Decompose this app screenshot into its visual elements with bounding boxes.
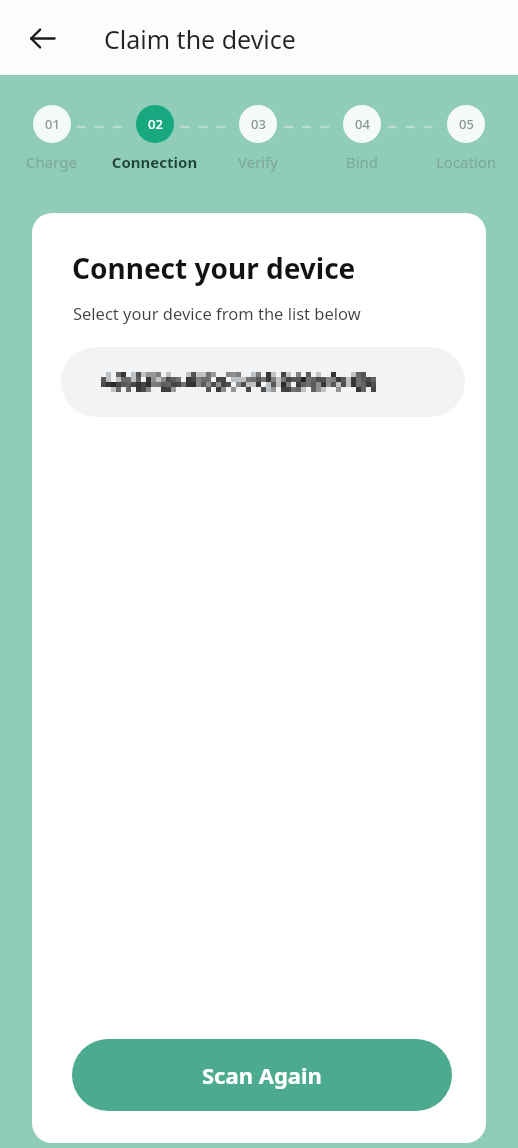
button[interactable]: 04 <box>343 105 381 143</box>
button[interactable]: 03 <box>239 105 277 143</box>
button[interactable]: Back <box>14 10 70 66</box>
staticText: 02 <box>148 115 163 133</box>
button[interactable]: 02 <box>136 105 174 143</box>
staticText: 04 <box>355 115 370 133</box>
staticText: 03 <box>251 115 266 133</box>
staticText: Scan Again <box>202 1060 322 1090</box>
button[interactable]: 01 <box>33 105 71 143</box>
button[interactable]: Device <box>61 347 465 417</box>
staticText: Connection <box>103 152 206 172</box>
button[interactable]: 05 <box>447 105 485 143</box>
staticText: Connect your device <box>72 249 356 287</box>
button[interactable]: Scan Again <box>72 1039 452 1111</box>
staticText: Charge <box>0 152 103 172</box>
staticText: 01 <box>45 115 60 133</box>
staticText: Select your device from the list below <box>73 302 361 324</box>
staticText: 05 <box>459 115 474 133</box>
staticText: Claim the device <box>104 22 296 56</box>
staticText: Bind <box>310 152 414 172</box>
staticText: Verify <box>206 152 310 172</box>
staticText: Location <box>414 152 518 172</box>
